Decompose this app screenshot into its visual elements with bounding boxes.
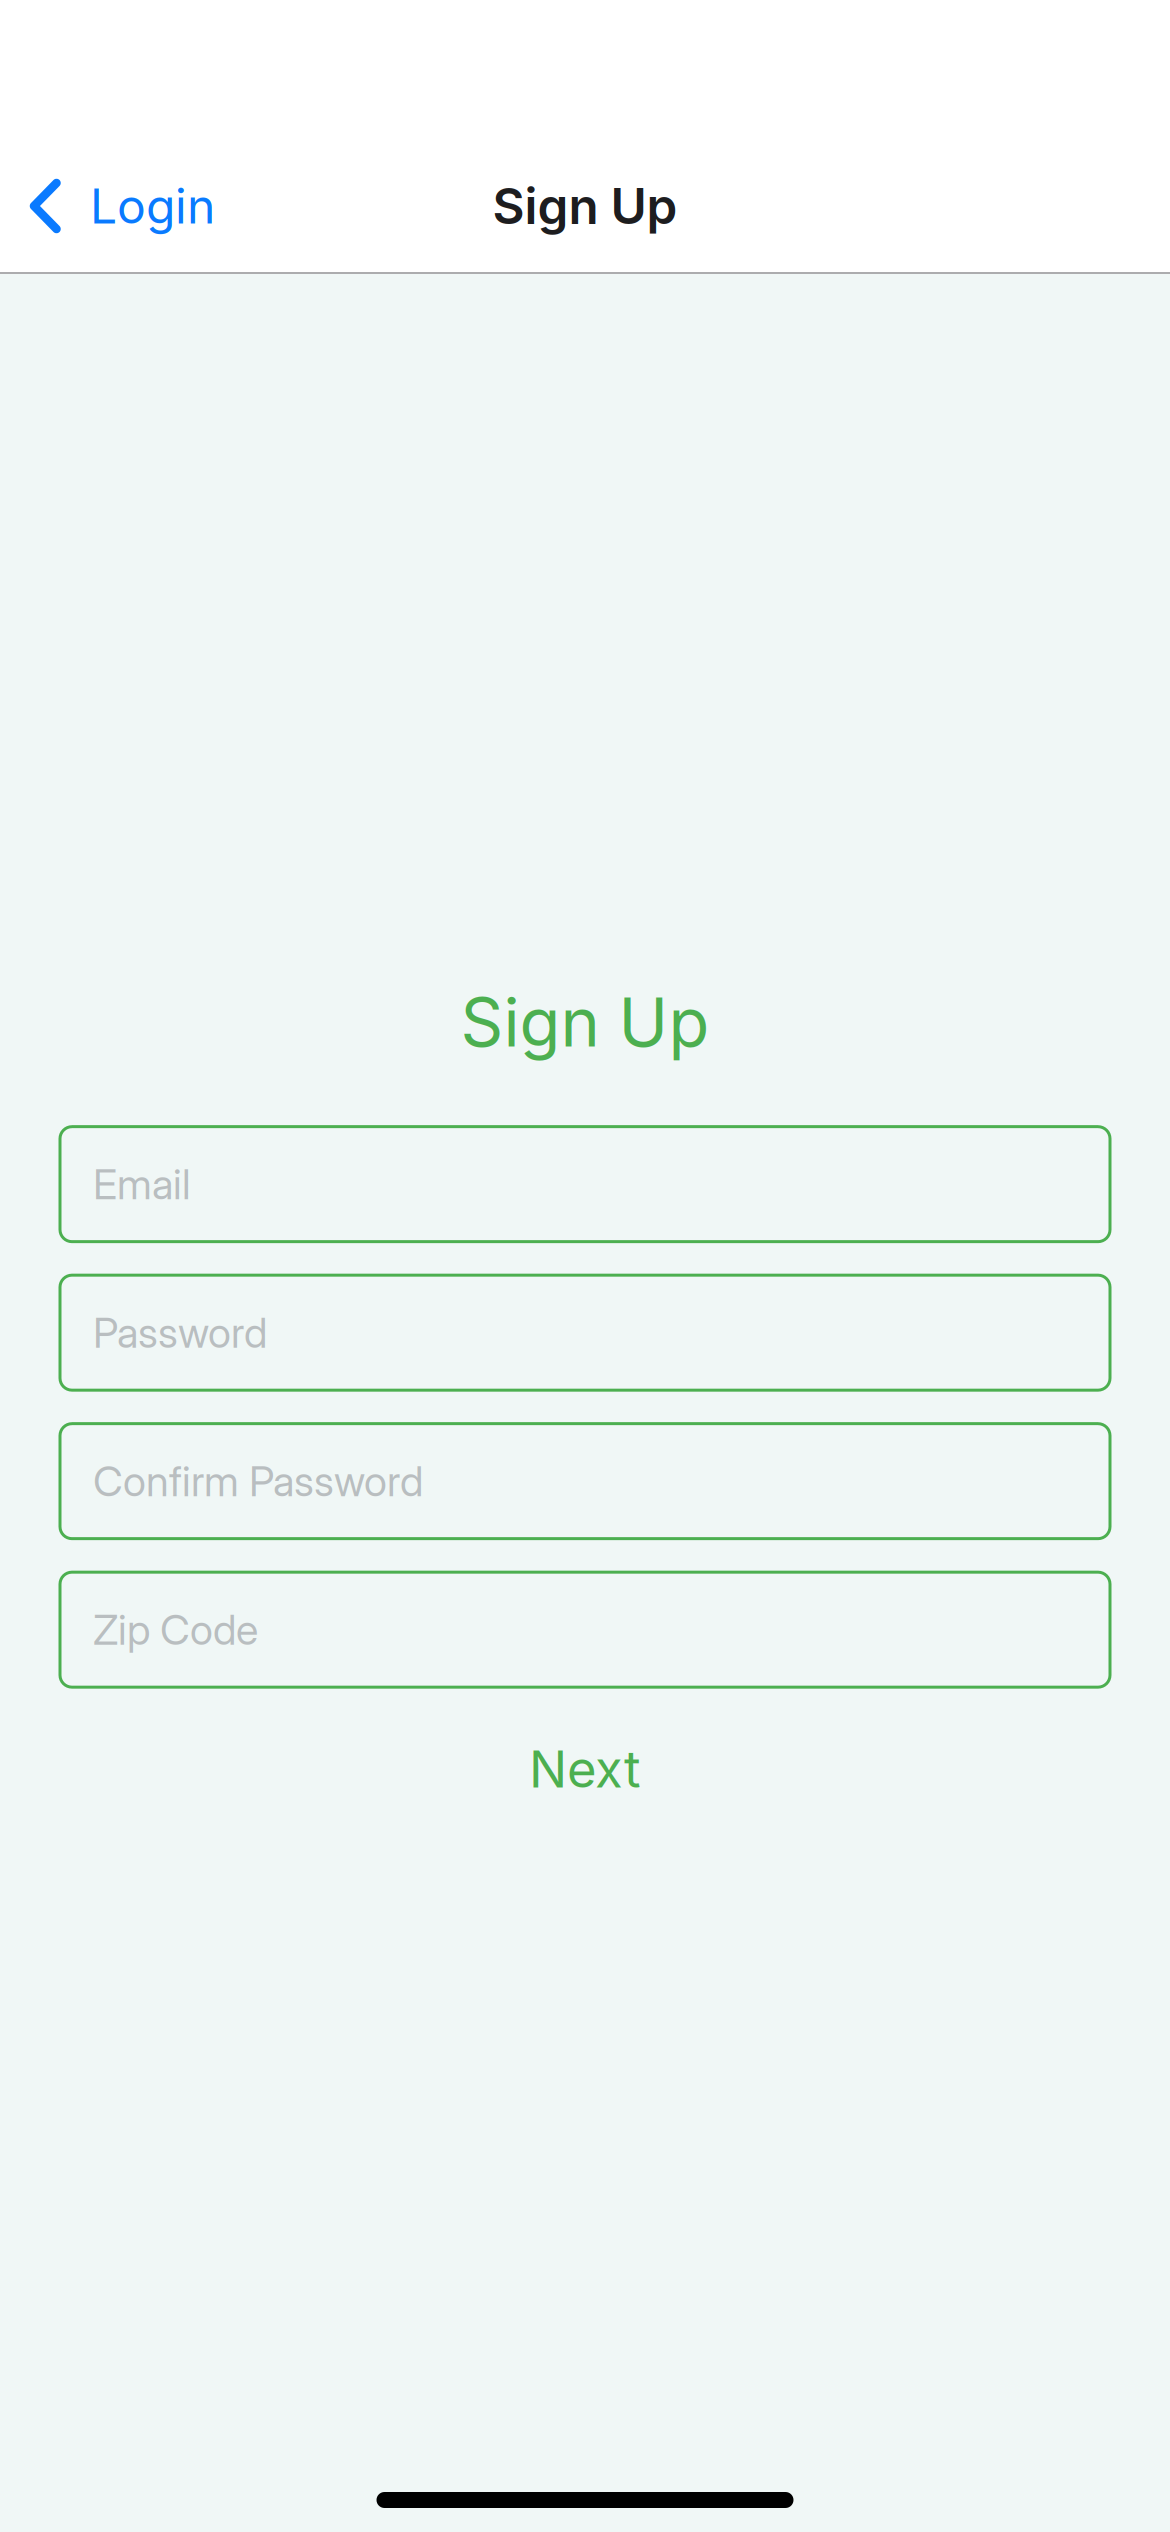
staticText: Zip Code xyxy=(93,1605,258,1655)
button[interactable]: Back to Login xyxy=(0,140,239,272)
button[interactable]: Zip Code xyxy=(60,1572,1110,1687)
button[interactable]: Next xyxy=(415,1738,755,1800)
staticText: Login xyxy=(90,177,215,235)
button[interactable]: Email xyxy=(60,1127,1110,1242)
button[interactable]: Confirm Password xyxy=(60,1424,1110,1539)
staticText: Confirm Password xyxy=(93,1456,423,1506)
staticText: Sign Up xyxy=(492,176,677,236)
staticText: Next xyxy=(529,1738,641,1800)
staticText: Email xyxy=(93,1159,191,1209)
staticText: Password xyxy=(93,1308,267,1358)
staticText: Sign Up xyxy=(460,982,709,1063)
button[interactable]: Password xyxy=(60,1275,1110,1390)
